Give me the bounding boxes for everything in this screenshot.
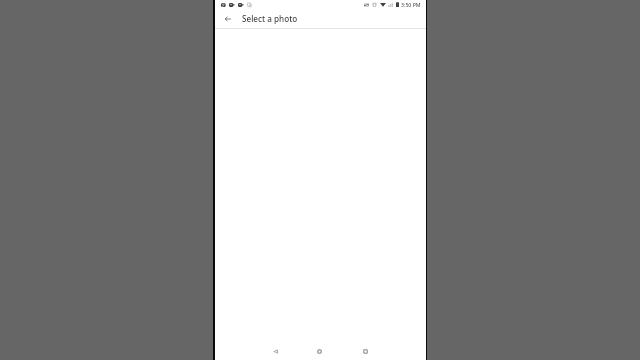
button[interactable]: Navigate up (219, 10, 236, 27)
button[interactable]: Back (268, 344, 282, 358)
button[interactable]: Home (312, 344, 326, 358)
staticText: 3:50 PM (401, 1, 421, 8)
staticText: Select a photo (242, 13, 298, 24)
button[interactable]: Recent apps (358, 344, 372, 358)
